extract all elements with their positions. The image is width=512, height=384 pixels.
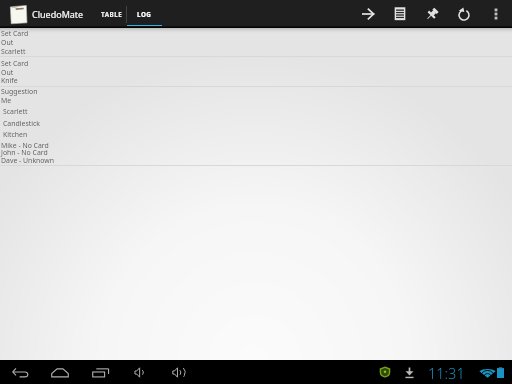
other: Wi-Fi [481,367,494,378]
staticText: Out [1,38,14,47]
button[interactable]: Back [7,360,35,384]
staticText: Mike - No Card [1,141,49,150]
button[interactable]: Volume up [166,360,194,384]
button[interactable] [0,86,512,166]
staticText: 11:31 [428,363,465,383]
button[interactable]: App icon [8,0,28,28]
staticText: Kitchen [3,130,28,139]
staticText: Me [1,96,12,105]
staticText: Set Card [1,59,29,68]
button[interactable]: More options [480,0,512,28]
button[interactable]: Volume down [126,360,154,384]
staticText: Scarlett [1,47,26,56]
staticText: Candlestick [3,119,40,128]
staticText: TABLE [101,10,123,19]
staticText: Out [1,68,14,77]
button[interactable]: LOG [127,0,162,28]
staticText: Knife [1,76,18,85]
button[interactable] [0,57,512,86]
button[interactable]: Pin [416,0,448,28]
staticText: Suggestion [1,87,38,96]
other: Battery [497,367,504,378]
button[interactable]: Home [46,360,74,384]
staticText: LOG [137,10,152,19]
button[interactable] [0,28,512,56]
staticText: Scarlett [3,107,28,116]
other: Downloading [405,367,414,378]
button[interactable]: TABLE [98,0,126,28]
staticText: CluedoMate [32,8,84,20]
staticText: Dave - Unknown [1,156,55,165]
button[interactable]: Next player [352,0,384,28]
button[interactable]: Notes [384,0,416,28]
other: Security [380,367,390,377]
button[interactable]: Recent apps [87,360,115,384]
staticText: Set Card [1,29,29,38]
staticText: John - No Card [1,148,48,157]
button[interactable]: Undo [448,0,480,28]
